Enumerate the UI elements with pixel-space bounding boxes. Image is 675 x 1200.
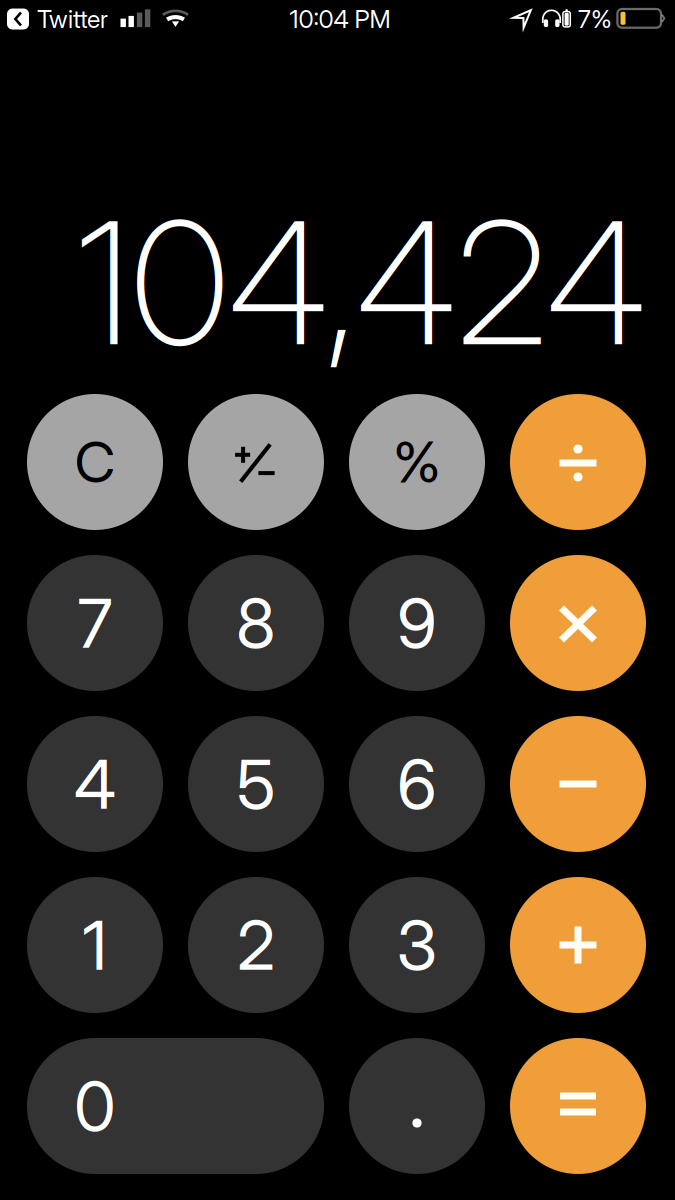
staticText: Twitter: [37, 4, 108, 34]
staticText: 104,424: [76, 180, 646, 385]
staticText: C: [74, 428, 115, 496]
button[interactable]: Back to Twitter: [0, 0, 106, 38]
staticText: 10:04 PM: [289, 4, 390, 34]
button[interactable]: 1: [27, 877, 163, 1013]
staticText: 9: [397, 582, 437, 664]
staticText: 5: [236, 743, 275, 825]
staticText: 3: [396, 904, 437, 986]
staticText: 7: [77, 582, 112, 664]
staticText: 2: [237, 904, 275, 986]
staticText: %: [393, 428, 441, 496]
button[interactable]: 3: [349, 877, 485, 1013]
staticText: 8: [236, 582, 276, 664]
button[interactable]: Plus: [510, 877, 646, 1013]
button[interactable]: 4: [27, 716, 163, 852]
button[interactable]: 9: [349, 555, 485, 691]
staticText: 4: [74, 743, 116, 825]
button[interactable]: 5: [188, 716, 324, 852]
button[interactable]: Decimal point: [349, 1038, 485, 1174]
button[interactable]: Multiply: [510, 555, 646, 691]
button[interactable]: Minus: [510, 716, 646, 852]
button[interactable]: 7: [27, 555, 163, 691]
button[interactable]: Divide: [510, 394, 646, 530]
button[interactable]: 0: [27, 1038, 324, 1174]
staticText: 0: [74, 1065, 116, 1147]
staticText: 6: [397, 743, 437, 825]
staticText: 7%: [578, 4, 612, 34]
button[interactable]: C: [27, 394, 163, 530]
button[interactable]: %: [349, 394, 485, 530]
button[interactable]: Plus minus: [188, 394, 324, 530]
button[interactable]: 2: [188, 877, 324, 1013]
button[interactable]: Equals: [510, 1038, 646, 1174]
button[interactable]: 8: [188, 555, 324, 691]
button[interactable]: 6: [349, 716, 485, 852]
staticText: 1: [82, 904, 107, 986]
